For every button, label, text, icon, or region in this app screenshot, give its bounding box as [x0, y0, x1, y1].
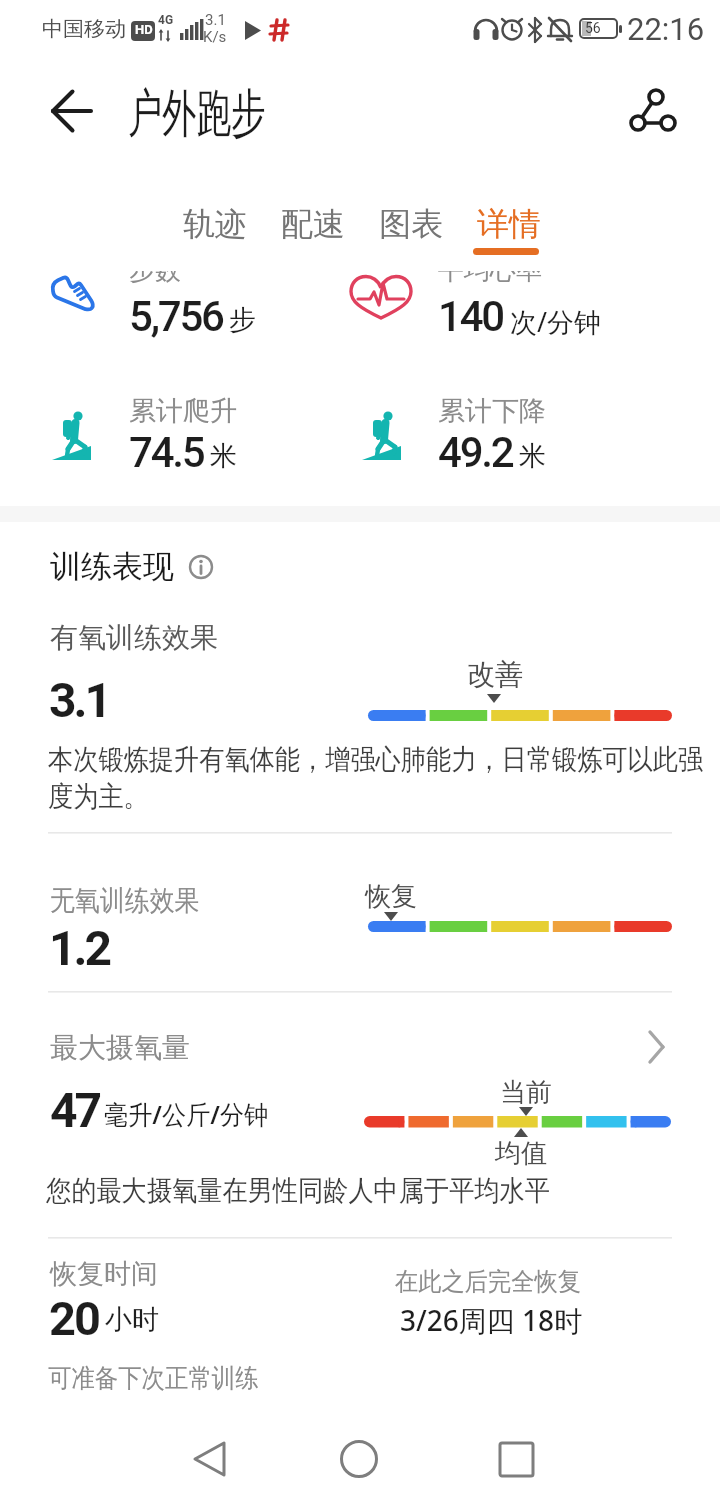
button[interactable]: 轨迹: [183, 204, 247, 244]
staticText: 累计下降: [438, 394, 546, 428]
staticText: 轨迹: [183, 204, 247, 244]
button[interactable]: [36, 85, 106, 140]
staticText: 户外跑步: [128, 81, 265, 147]
button[interactable]: 详情: [477, 204, 541, 244]
staticText: 5,756: [129, 292, 223, 341]
staticText: 米: [210, 439, 237, 473]
staticText: 恢复: [365, 880, 417, 913]
staticText: 可准备下次正常训练: [48, 1362, 259, 1395]
staticText: 有氧训练效果: [50, 620, 218, 655]
staticText: 米: [519, 439, 546, 473]
staticText: 中国移动: [42, 16, 126, 42]
staticText: K/s: [203, 28, 227, 46]
staticText: 您的最大摄氧量在男性同龄人中属于平均水平: [46, 1173, 550, 1208]
staticText: 训练表现: [50, 547, 174, 586]
button[interactable]: [615, 80, 685, 140]
staticText: 小时: [105, 1303, 159, 1337]
staticText: HD: [135, 22, 153, 37]
staticText: 图表: [379, 204, 443, 244]
staticText: 3.1: [49, 672, 110, 728]
staticText: 49.2: [438, 428, 513, 477]
staticText: 恢复时间: [50, 1257, 158, 1291]
staticText: 56: [585, 20, 601, 36]
staticText: 配速: [281, 204, 345, 244]
button[interactable]: [0, 1010, 720, 1100]
button[interactable]: 图表: [379, 204, 443, 244]
staticText: 3.1: [205, 11, 226, 29]
staticText: 20: [49, 1291, 99, 1346]
staticText: 无氧训练效果: [50, 883, 199, 918]
staticText: 累计爬升: [129, 394, 237, 428]
button[interactable]: [330, 1435, 390, 1485]
staticText: 140: [438, 292, 504, 341]
button[interactable]: [185, 551, 217, 583]
staticText: 47: [50, 1082, 100, 1138]
staticText: 最大摄氧量: [50, 1030, 190, 1065]
staticText: 均值: [495, 1137, 547, 1170]
staticText: 毫升/公斤/分钟: [104, 1096, 269, 1132]
staticText: 22:16: [627, 11, 705, 47]
staticText: 改善: [467, 657, 523, 692]
staticText: 本次锻炼提升有氧体能，增强心肺能力，日常锻炼可以此强: [48, 742, 696, 777]
staticText: 次/分钟: [510, 303, 602, 340]
button[interactable]: [180, 1435, 240, 1485]
staticText: 步: [229, 303, 256, 337]
staticText: 4G: [158, 13, 174, 27]
staticText: 度为主。: [48, 779, 149, 814]
button[interactable]: [485, 1435, 545, 1485]
staticText: 1.2: [49, 920, 110, 976]
staticText: 在此之后完全恢复: [395, 1266, 581, 1297]
staticText: 74.5: [129, 428, 204, 477]
staticText: 3/26周四 18时: [400, 1301, 583, 1339]
staticText: 当前: [500, 1076, 552, 1109]
staticText: 详情: [477, 204, 541, 244]
button[interactable]: 配速: [281, 204, 345, 244]
